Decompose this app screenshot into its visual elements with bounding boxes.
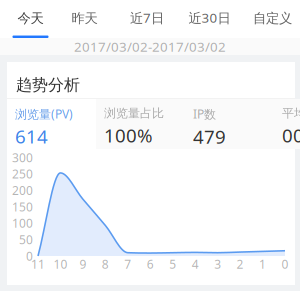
staticText: 8 bbox=[102, 256, 109, 272]
staticText: 2017/03/02-2017/03/02 bbox=[74, 38, 226, 55]
button[interactable]: 自定义 bbox=[242, 0, 300, 38]
staticText: 6 bbox=[147, 256, 154, 272]
button[interactable]: 平均访问 bbox=[274, 99, 300, 149]
staticText: 浏览量(PV) bbox=[15, 106, 73, 122]
staticText: 50 bbox=[19, 232, 33, 247]
staticText: 4 bbox=[192, 256, 199, 272]
staticText: 0 bbox=[26, 248, 33, 264]
button[interactable]: 近7日 bbox=[117, 0, 177, 38]
staticText: 2 bbox=[237, 256, 244, 272]
staticText: 昨天 bbox=[71, 10, 97, 26]
staticText: 7 bbox=[124, 256, 131, 272]
staticText: 近7日 bbox=[130, 9, 164, 26]
staticText: 1 bbox=[259, 256, 266, 272]
staticText: 近30日 bbox=[188, 9, 230, 26]
button[interactable]: 浏览量(PV) bbox=[7, 99, 96, 149]
staticText: 平均访问 bbox=[282, 106, 300, 121]
staticText: 11 bbox=[31, 256, 45, 272]
staticText: 100% bbox=[104, 123, 153, 147]
button[interactable]: 浏览量占比 bbox=[96, 99, 185, 149]
staticText: 0 bbox=[281, 256, 288, 272]
staticText: 自定义 bbox=[253, 10, 292, 26]
staticText: 浏览量占比 bbox=[104, 106, 164, 121]
staticText: 00: bbox=[282, 123, 300, 147]
staticText: 100 bbox=[12, 215, 33, 231]
staticText: 9 bbox=[79, 256, 86, 272]
staticText: 479 bbox=[193, 124, 226, 149]
staticText: 200 bbox=[12, 182, 33, 198]
button[interactable]: 今天 bbox=[0, 0, 60, 38]
staticText: 300 bbox=[12, 149, 33, 165]
staticText: 今天 bbox=[17, 10, 43, 26]
staticText: 614 bbox=[15, 124, 48, 149]
staticText: 趋势分析 bbox=[16, 75, 80, 95]
button[interactable]: 近30日 bbox=[179, 0, 239, 38]
staticText: IP数 bbox=[193, 106, 216, 122]
button[interactable]: 昨天 bbox=[54, 0, 114, 38]
staticText: 3 bbox=[214, 256, 221, 272]
button[interactable]: IP数 bbox=[185, 99, 274, 149]
staticText: 5 bbox=[169, 256, 176, 272]
staticText: 250 bbox=[12, 166, 33, 182]
staticText: 10 bbox=[53, 256, 67, 272]
staticText: 150 bbox=[12, 199, 33, 215]
